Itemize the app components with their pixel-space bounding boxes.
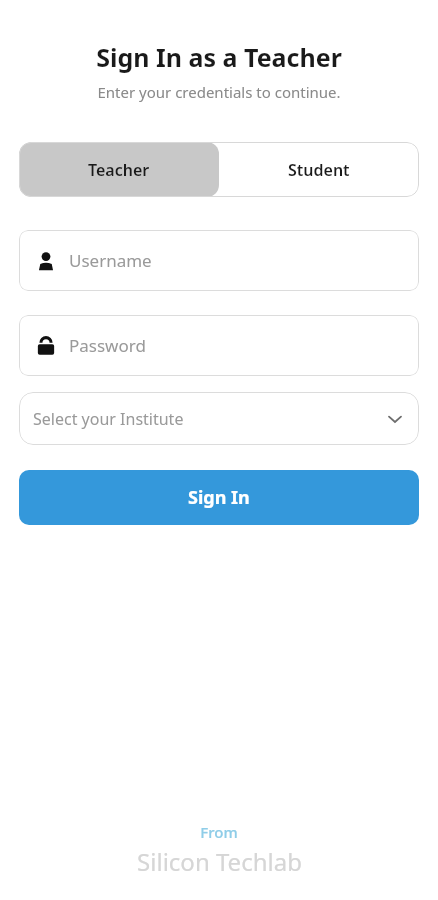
- button[interactable]: Select your Institute: [19, 392, 419, 445]
- button[interactable]: Sign In: [19, 470, 419, 525]
- button[interactable]: Student: [219, 142, 419, 197]
- staticText: Sign In: [188, 485, 250, 510]
- staticText: Username: [69, 249, 152, 272]
- button[interactable]: Username: [19, 230, 419, 291]
- staticText: Student: [288, 159, 350, 181]
- staticText: Select your Institute: [33, 408, 385, 430]
- staticText: Password: [69, 334, 146, 357]
- staticText: Sign In as a Teacher: [96, 40, 342, 74]
- staticText: Enter your credentials to continue.: [97, 82, 341, 102]
- button[interactable]: Teacher: [19, 142, 219, 197]
- staticText: Silicon Techlab: [137, 845, 302, 878]
- staticText: From: [200, 822, 238, 842]
- staticText: Teacher: [88, 159, 150, 181]
- button[interactable]: Password: [19, 315, 419, 376]
